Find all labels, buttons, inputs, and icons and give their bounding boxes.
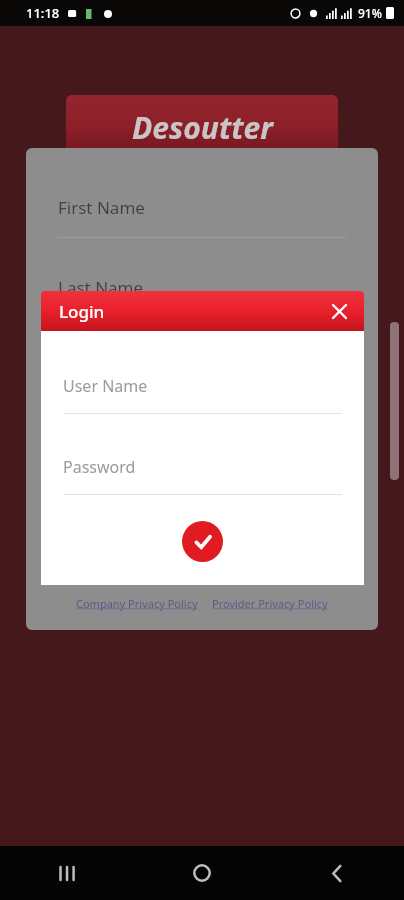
button[interactable]: Back (269, 846, 404, 900)
button[interactable]: Submit login (182, 521, 223, 562)
staticText: Provider Privacy Policy (212, 596, 328, 611)
button[interactable]: Recents (0, 846, 134, 900)
staticText: Last Name (58, 276, 144, 299)
staticText: User Name (63, 375, 148, 397)
button[interactable]: Password (63, 456, 342, 495)
button[interactable]: Home (134, 846, 269, 900)
button[interactable]: Desoutter (66, 95, 338, 159)
staticText: 11:18 (26, 4, 60, 22)
staticText: Company Privacy Policy (76, 596, 198, 611)
button[interactable]: First Name (58, 196, 346, 238)
staticText: Desoutter (132, 107, 273, 148)
staticText: Login (59, 300, 105, 323)
button[interactable]: Last Name (58, 276, 346, 318)
button[interactable]: User Name (63, 375, 342, 414)
button[interactable]: Close (322, 294, 356, 328)
staticText: 91% (358, 5, 382, 21)
staticText: First Name (58, 196, 145, 219)
button[interactable]: Company Privacy Policy (74, 592, 200, 615)
staticText: Password (63, 456, 136, 478)
button[interactable]: Provider Privacy Policy (210, 592, 330, 615)
